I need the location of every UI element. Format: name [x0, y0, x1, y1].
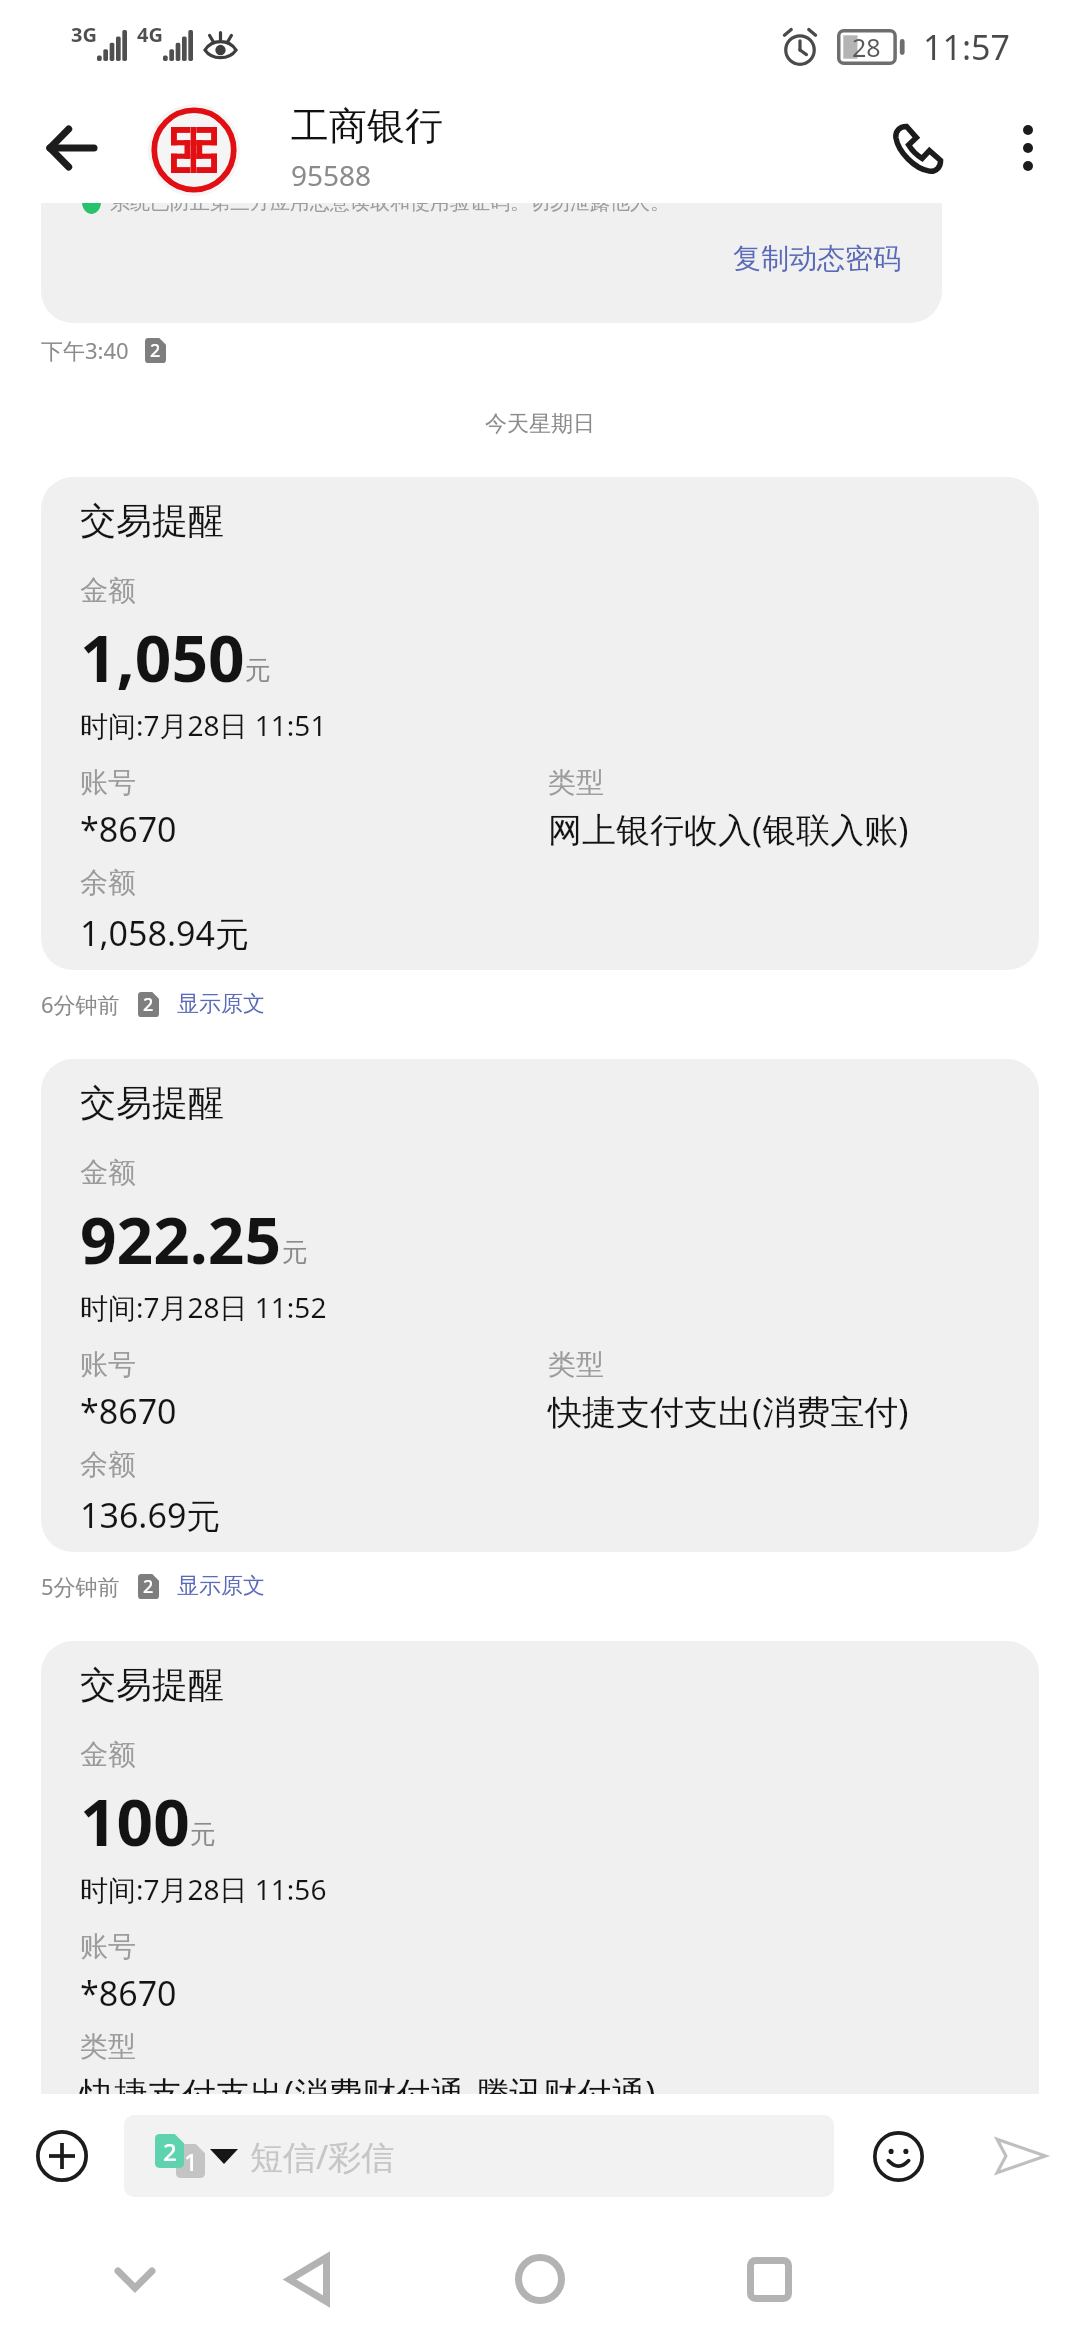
button[interactable]: 交易提醒 — [41, 1059, 1039, 1552]
staticText: 5分钟前 — [41, 1571, 120, 1601]
staticText: 时间:7月28日 11:51 — [80, 706, 327, 744]
staticText: 2 — [150, 338, 161, 363]
staticText: 元 — [245, 654, 271, 687]
button[interactable]: Hide keyboard — [75, 2218, 195, 2340]
staticText: 类型 — [548, 765, 604, 800]
button[interactable]: Add attachment — [0, 2094, 124, 2218]
staticText: 显示原文 — [177, 1572, 265, 1600]
staticText: 快捷支付支出(消费宝付) — [548, 1388, 909, 1434]
staticText: 余额 — [80, 1447, 136, 1482]
staticText: 复制动态密码 — [733, 241, 901, 276]
staticText: 类型 — [80, 2029, 136, 2064]
staticText: *8670 — [80, 806, 177, 852]
staticText: 2 — [143, 1574, 154, 1599]
staticText: 账号 — [80, 765, 136, 800]
staticText: 账号 — [80, 1347, 136, 1382]
staticText: 快捷支付支出(消费财付通-腾讯财付通) — [80, 2070, 656, 2116]
button[interactable]: 1 — [124, 2115, 834, 2197]
button[interactable]: 系统已防止第三方应用恶意读取和使用验证码。切勿泄露他人。 — [41, 203, 942, 323]
staticText: 2 — [143, 992, 154, 1017]
staticText: 时间:7月28日 11:52 — [80, 1288, 327, 1326]
staticText: 工商银行 — [291, 102, 443, 150]
staticText: 1 — [184, 2145, 198, 2178]
button[interactable]: 复制动态密码 — [733, 241, 901, 276]
staticText: 95588 — [291, 156, 372, 194]
button[interactable]: 显示原文 — [177, 1572, 265, 1600]
staticText: 1,058.94元 — [80, 910, 249, 956]
button[interactable]: Send — [962, 2094, 1080, 2218]
staticText: 4G — [137, 21, 163, 48]
staticText: 28 — [852, 30, 881, 64]
button[interactable]: Recent apps — [709, 2218, 829, 2340]
staticText: 网上银行收入(银联入账) — [548, 806, 909, 852]
staticText: 下午3:40 — [41, 335, 129, 365]
button[interactable]: Emoji — [834, 2094, 962, 2218]
staticText: *8670 — [80, 1388, 177, 1434]
staticText: 账号 — [80, 1929, 136, 1964]
staticText: 136.69元 — [80, 1492, 221, 1538]
staticText: 元 — [190, 1818, 216, 1851]
staticText: 100 — [80, 1778, 190, 1865]
staticText: 系统已防止第三方应用恶意读取和使用验证码。切勿泄露他人。 — [110, 203, 670, 215]
staticText: 3G — [71, 21, 97, 48]
button[interactable]: Back — [0, 93, 141, 203]
staticText: 2 — [163, 2135, 177, 2168]
staticText: 金额 — [80, 1155, 136, 1190]
button[interactable]: Call — [862, 93, 975, 203]
button[interactable]: Back — [248, 2218, 368, 2340]
staticText: *8670 — [80, 1970, 177, 2016]
staticText: 11:57 — [923, 24, 1010, 70]
button[interactable]: More options — [975, 93, 1080, 203]
staticText: 显示原文 — [177, 990, 265, 1018]
staticText: 交易提醒 — [80, 1080, 224, 1125]
staticText: 交易提醒 — [80, 1662, 224, 1707]
staticText: 今天星期日 — [0, 410, 1080, 438]
staticText: 金额 — [80, 1737, 136, 1772]
staticText: 交易提醒 — [80, 498, 224, 543]
staticText: 时间:7月28日 11:56 — [80, 1870, 327, 1908]
staticText: 金额 — [80, 573, 136, 608]
button[interactable] — [141, 93, 247, 203]
staticText: 短信/彩信 — [250, 2134, 395, 2179]
staticText: 6分钟前 — [41, 989, 120, 1019]
button[interactable]: Home — [480, 2218, 600, 2340]
button[interactable]: 交易提醒 — [41, 1641, 1039, 2130]
button[interactable]: 显示原文 — [177, 990, 265, 1018]
staticText: 元 — [282, 1236, 308, 1269]
staticText: 类型 — [548, 1347, 604, 1382]
button[interactable]: 交易提醒 — [41, 477, 1039, 970]
staticText: 922.25 — [80, 1196, 282, 1283]
staticText: 1,050 — [80, 614, 245, 701]
staticText: 余额 — [80, 865, 136, 900]
